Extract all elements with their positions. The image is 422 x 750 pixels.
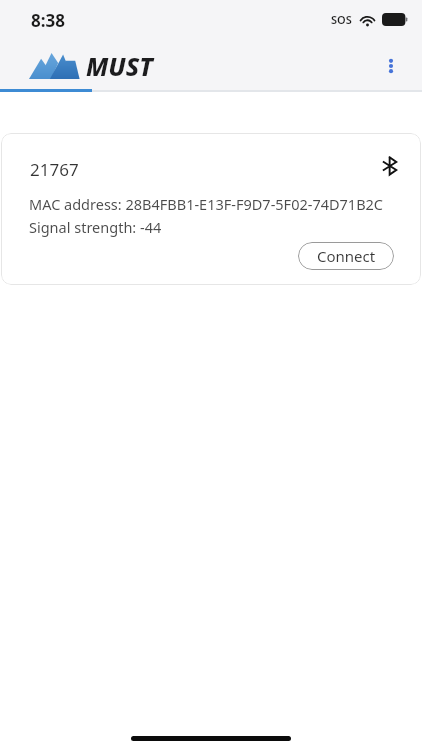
staticText: Signal strength: -44 xyxy=(29,217,162,237)
staticText: 21767 xyxy=(30,158,79,181)
staticText: MAC address: 28B4FBB1-E13F-F9D7-5F02-74D… xyxy=(29,194,401,214)
staticText: 8:38 xyxy=(31,9,65,32)
button[interactable]: 21767 xyxy=(1,133,421,285)
button[interactable]: Connect xyxy=(298,242,394,270)
staticText: Connect xyxy=(317,246,376,266)
staticText: MUST xyxy=(86,49,153,83)
staticText: SOS xyxy=(331,12,352,27)
button[interactable]: More options xyxy=(374,49,408,83)
other: Bluetooth xyxy=(379,155,401,177)
